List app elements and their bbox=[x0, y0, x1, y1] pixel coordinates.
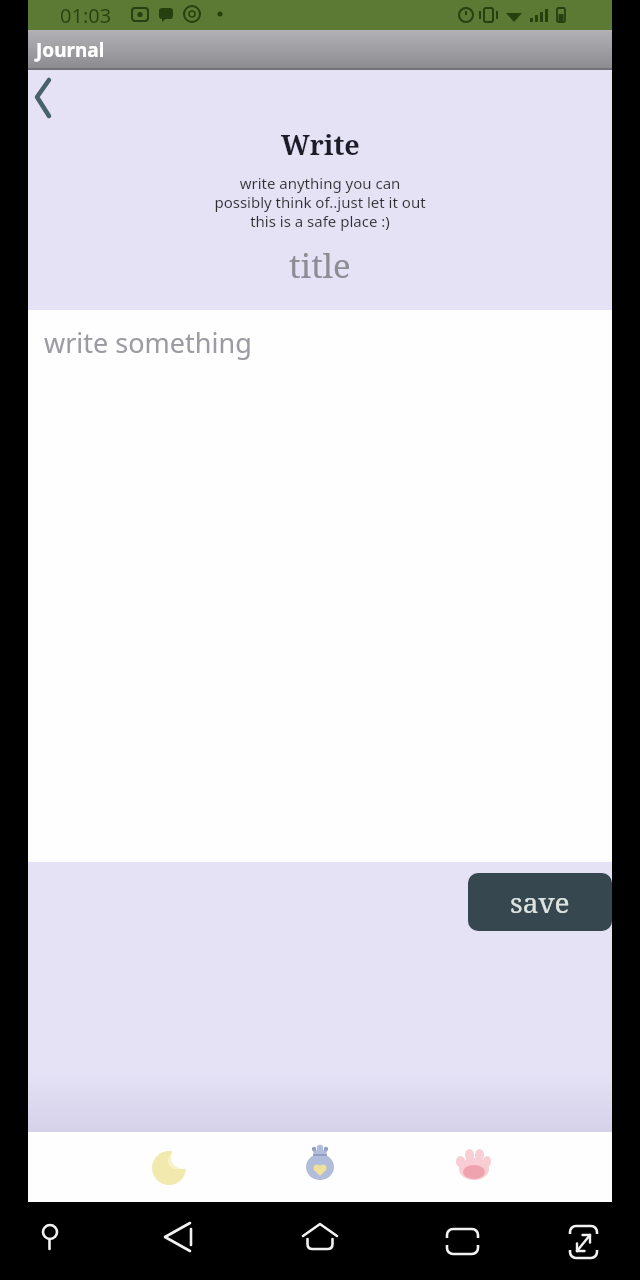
button[interactable] bbox=[158, 1222, 198, 1262]
staticText: Write bbox=[281, 126, 360, 163]
staticText: 01:03 bbox=[60, 2, 112, 29]
button[interactable] bbox=[454, 1146, 492, 1184]
button[interactable]: title bbox=[289, 243, 351, 288]
staticText: write anything you can possibly think of… bbox=[214, 173, 426, 231]
staticText: title bbox=[289, 243, 351, 288]
button[interactable] bbox=[152, 1148, 190, 1186]
staticText: save bbox=[510, 883, 570, 921]
button[interactable] bbox=[567, 1223, 601, 1263]
button[interactable] bbox=[30, 78, 56, 122]
button[interactable] bbox=[302, 1142, 340, 1180]
button[interactable]: write something bbox=[28, 310, 612, 862]
button[interactable]: save bbox=[468, 873, 612, 931]
staticText: write something bbox=[44, 324, 252, 361]
button[interactable] bbox=[36, 1222, 66, 1262]
button[interactable] bbox=[300, 1222, 340, 1262]
staticText: Journal bbox=[36, 37, 105, 63]
button[interactable] bbox=[444, 1226, 484, 1260]
